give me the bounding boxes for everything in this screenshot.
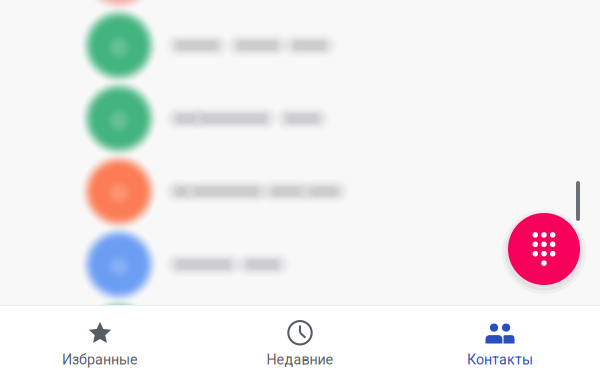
staticText: Недавние (266, 351, 333, 368)
button[interactable]: Контакты (400, 306, 600, 379)
button[interactable] (0, 0, 600, 9)
button[interactable]: Клавиатура (499, 204, 589, 294)
button[interactable]: Избранные (0, 306, 200, 379)
button[interactable] (0, 228, 600, 301)
staticText: Избранные (62, 351, 138, 368)
button[interactable] (0, 301, 600, 374)
button[interactable] (0, 9, 600, 82)
button[interactable] (0, 155, 600, 228)
button[interactable]: Недавние (200, 306, 400, 379)
staticText: Контакты (467, 351, 533, 368)
button[interactable] (0, 82, 600, 155)
